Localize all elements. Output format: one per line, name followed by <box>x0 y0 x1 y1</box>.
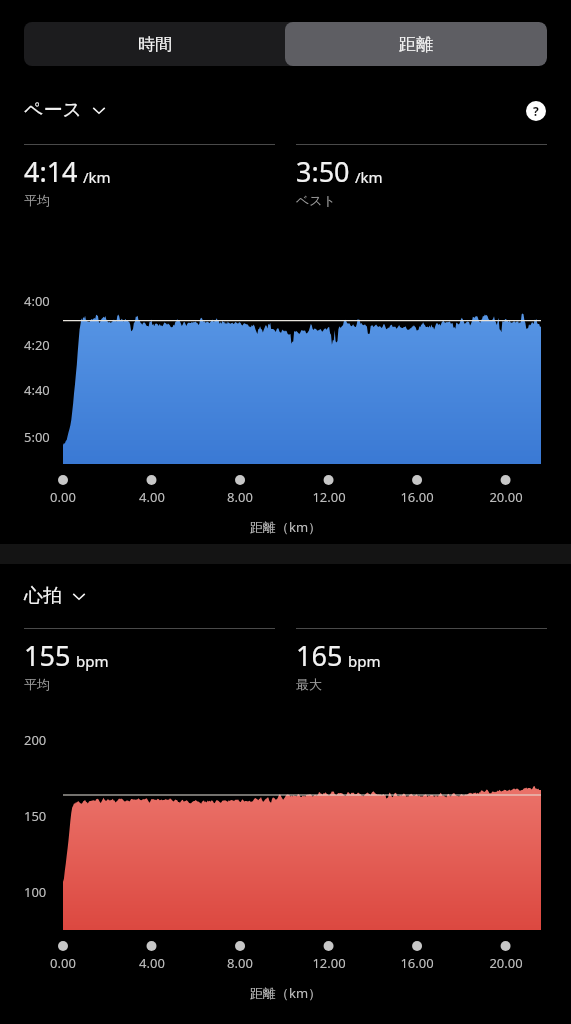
staticText: bpm <box>348 651 381 671</box>
staticText: 200 <box>24 731 47 749</box>
staticText: 5:00 <box>24 428 50 446</box>
staticText: /km <box>355 167 383 187</box>
staticText: 最大 <box>296 676 322 692</box>
staticText: 12.00 <box>312 954 346 972</box>
staticText: 20.00 <box>489 488 523 506</box>
staticText: bpm <box>76 651 109 671</box>
staticText: 平均 <box>24 192 50 208</box>
staticText: 3:50 <box>296 153 350 190</box>
staticText: 150 <box>24 807 47 825</box>
staticText: 距離（km） <box>250 984 322 1002</box>
staticText: 0.00 <box>50 954 76 972</box>
staticText: 16.00 <box>400 954 434 972</box>
staticText: 8.00 <box>227 488 253 506</box>
staticText: 165 <box>296 637 343 674</box>
staticText: 平均 <box>24 676 50 692</box>
button[interactable]: 時間 <box>24 22 285 66</box>
button[interactable]: ペース <box>24 98 108 122</box>
button[interactable]: 距離 <box>285 22 547 66</box>
staticText: ベスト <box>296 192 336 208</box>
staticText: 時間 <box>138 34 172 55</box>
staticText: 20.00 <box>489 954 523 972</box>
staticText: 8.00 <box>227 954 253 972</box>
staticText: 4.00 <box>139 954 165 972</box>
staticText: 12.00 <box>312 488 346 506</box>
staticText: 4:20 <box>24 336 50 354</box>
staticText: 心拍 <box>24 584 62 608</box>
staticText: 距離 <box>399 34 433 55</box>
staticText: 0.00 <box>50 488 76 506</box>
staticText: 4:00 <box>24 292 50 310</box>
staticText: 4:40 <box>24 381 50 399</box>
staticText: ? <box>533 103 539 119</box>
staticText: 4.00 <box>139 488 165 506</box>
staticText: 距離（km） <box>250 518 322 536</box>
button[interactable]: 心拍 <box>24 584 88 608</box>
staticText: /km <box>83 167 111 187</box>
button[interactable]: ヘルプ <box>523 98 549 124</box>
staticText: 100 <box>24 883 47 901</box>
staticText: 155 <box>24 637 71 674</box>
staticText: 4:14 <box>24 153 78 190</box>
staticText: ペース <box>24 98 82 122</box>
staticText: 16.00 <box>400 488 434 506</box>
